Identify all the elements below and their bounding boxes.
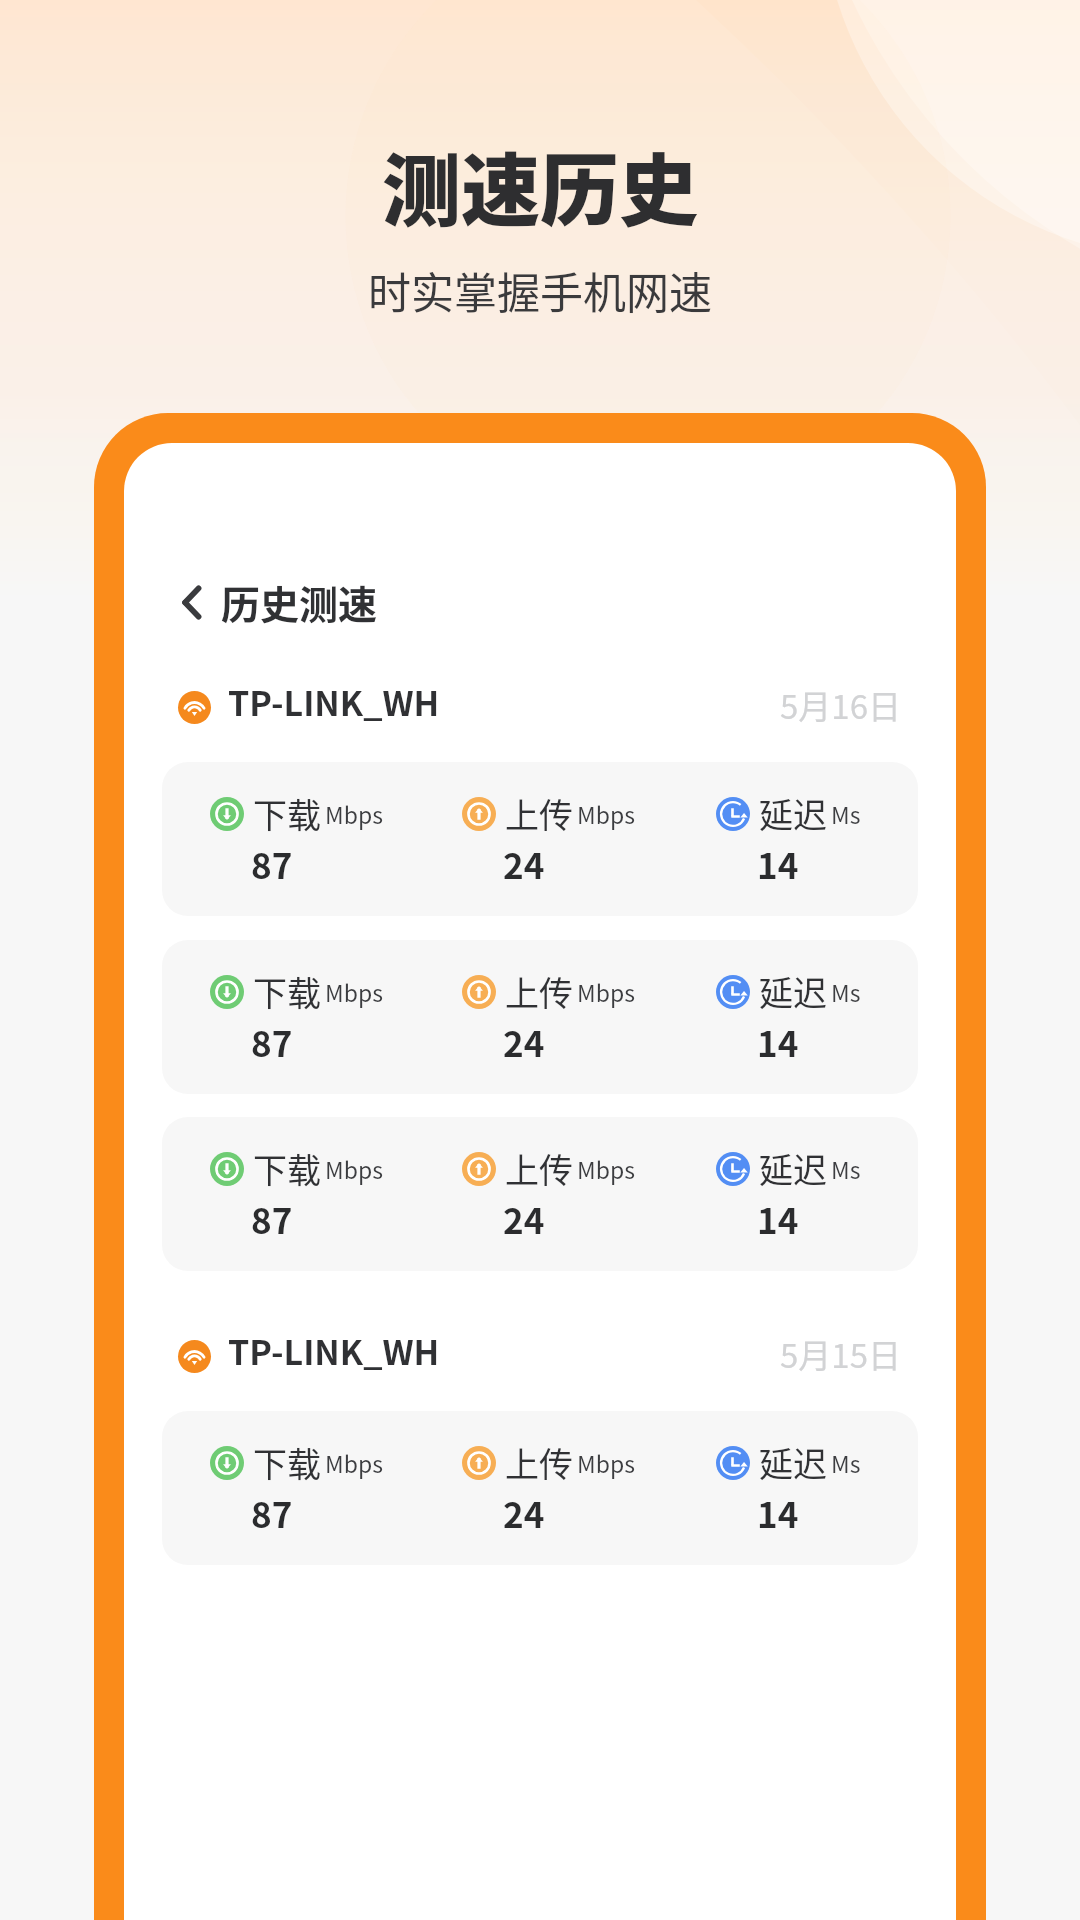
staticText: Ms <box>831 975 861 1008</box>
staticText: 5月16日 <box>780 681 901 729</box>
staticText: Mbps <box>577 1446 635 1479</box>
staticText: Mbps <box>577 975 635 1008</box>
staticText: 87 <box>251 1487 293 1538</box>
staticText: 历史测速 <box>221 574 378 630</box>
staticText: 87 <box>251 838 293 889</box>
staticText: 下载 <box>253 789 321 838</box>
button[interactable]: 下载 <box>162 1117 918 1271</box>
button[interactable]: Wi-Fi network <box>124 1314 956 1387</box>
staticText: Mbps <box>577 797 635 830</box>
button[interactable]: 下载 <box>162 1411 918 1565</box>
staticText: 上传 <box>505 1144 573 1193</box>
button[interactable]: 下载 <box>162 940 918 1094</box>
staticText: 24 <box>503 1487 545 1538</box>
staticText: 5月15日 <box>780 1330 901 1378</box>
staticText: 下载 <box>253 1438 321 1487</box>
staticText: Mbps <box>325 797 383 830</box>
staticText: 14 <box>757 838 799 889</box>
staticText: Ms <box>831 1446 861 1479</box>
other: Back <box>183 587 200 618</box>
staticText: 上传 <box>505 967 573 1016</box>
staticText: 87 <box>251 1193 293 1244</box>
staticText: 上传 <box>505 1438 573 1487</box>
staticText: 24 <box>503 838 545 889</box>
staticText: Mbps <box>325 1152 383 1185</box>
other: Wi-Fi network <box>178 1340 211 1373</box>
staticText: 14 <box>757 1487 799 1538</box>
staticText: TP-LINK_WH <box>228 677 440 726</box>
staticText: 延迟 <box>759 789 827 838</box>
staticText: Mbps <box>577 1152 635 1185</box>
staticText: Mbps <box>325 1446 383 1479</box>
staticText: 下载 <box>253 967 321 1016</box>
staticText: Mbps <box>325 975 383 1008</box>
staticText: 下载 <box>253 1144 321 1193</box>
staticText: 24 <box>503 1016 545 1067</box>
button[interactable]: 下载 <box>162 762 918 916</box>
staticText: Ms <box>831 1152 861 1185</box>
button[interactable]: Wi-Fi network <box>124 665 956 738</box>
staticText: 87 <box>251 1016 293 1067</box>
staticText: 时实掌握手机网速 <box>368 259 712 321</box>
button[interactable]: Back <box>124 564 956 640</box>
staticText: 延迟 <box>759 1144 827 1193</box>
staticText: 延迟 <box>759 967 827 1016</box>
other: Wi-Fi network <box>178 691 211 724</box>
staticText: 24 <box>503 1193 545 1244</box>
staticText: 测速历史 <box>382 128 698 242</box>
staticText: 上传 <box>505 789 573 838</box>
staticText: 14 <box>757 1016 799 1067</box>
staticText: TP-LINK_WH <box>228 1326 440 1375</box>
staticText: Ms <box>831 797 861 830</box>
staticText: 14 <box>757 1193 799 1244</box>
staticText: 延迟 <box>759 1438 827 1487</box>
